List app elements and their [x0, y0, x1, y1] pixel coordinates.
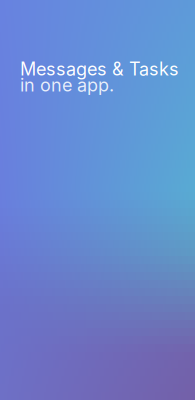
staticText: in one app. [20, 74, 114, 96]
staticText: Messages & Tasks [20, 58, 179, 80]
